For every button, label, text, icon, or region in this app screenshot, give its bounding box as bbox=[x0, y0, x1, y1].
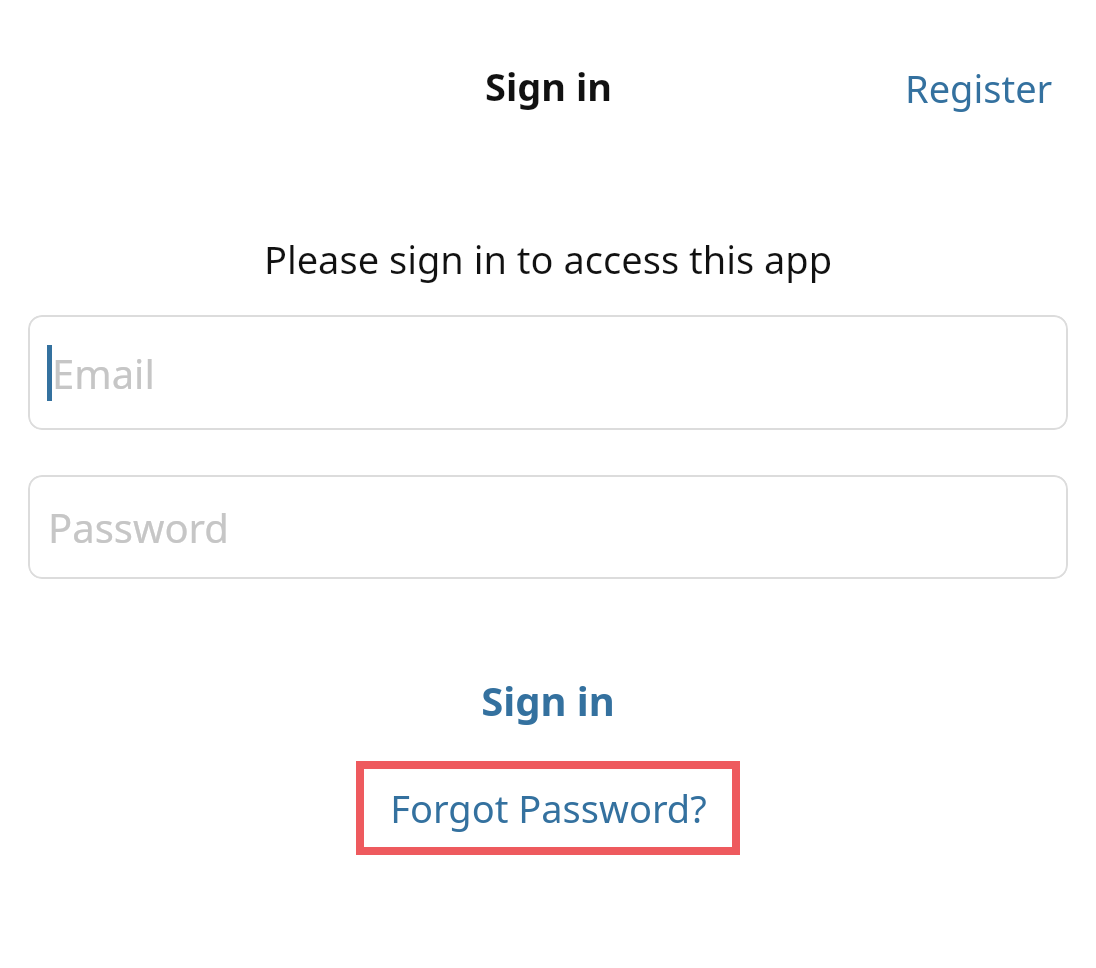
button[interactable]: Email bbox=[28, 315, 1068, 430]
staticText: Forgot Password? bbox=[390, 782, 707, 834]
staticText: Please sign in to access this app bbox=[0, 233, 1096, 285]
button[interactable]: Forgot Password? bbox=[356, 761, 740, 855]
staticText: Sign in bbox=[485, 60, 612, 112]
staticText: Register bbox=[905, 62, 1053, 114]
staticText: Sign in bbox=[481, 673, 615, 727]
button[interactable]: Password bbox=[28, 475, 1068, 579]
button[interactable]: Sign in bbox=[441, 661, 655, 739]
staticText: Email bbox=[52, 346, 155, 400]
button[interactable]: Register bbox=[887, 60, 1096, 120]
staticText: Password bbox=[48, 500, 229, 554]
